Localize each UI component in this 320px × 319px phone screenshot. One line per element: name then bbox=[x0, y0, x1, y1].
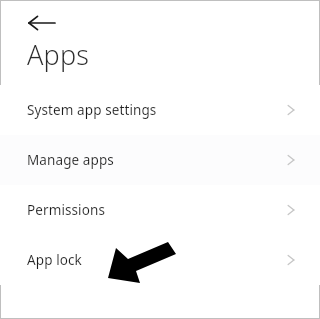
staticText: Apps bbox=[27, 36, 90, 73]
button[interactable]: Permissions bbox=[0, 185, 320, 235]
staticText: App lock bbox=[27, 251, 82, 269]
staticText: Permissions bbox=[27, 201, 105, 219]
button[interactable]: Back bbox=[18, 8, 62, 38]
button[interactable]: App lock bbox=[0, 235, 320, 285]
button[interactable]: Manage apps bbox=[0, 135, 320, 185]
button[interactable]: System app settings bbox=[0, 85, 320, 135]
staticText: Manage apps bbox=[27, 151, 114, 169]
staticText: System app settings bbox=[27, 101, 157, 119]
